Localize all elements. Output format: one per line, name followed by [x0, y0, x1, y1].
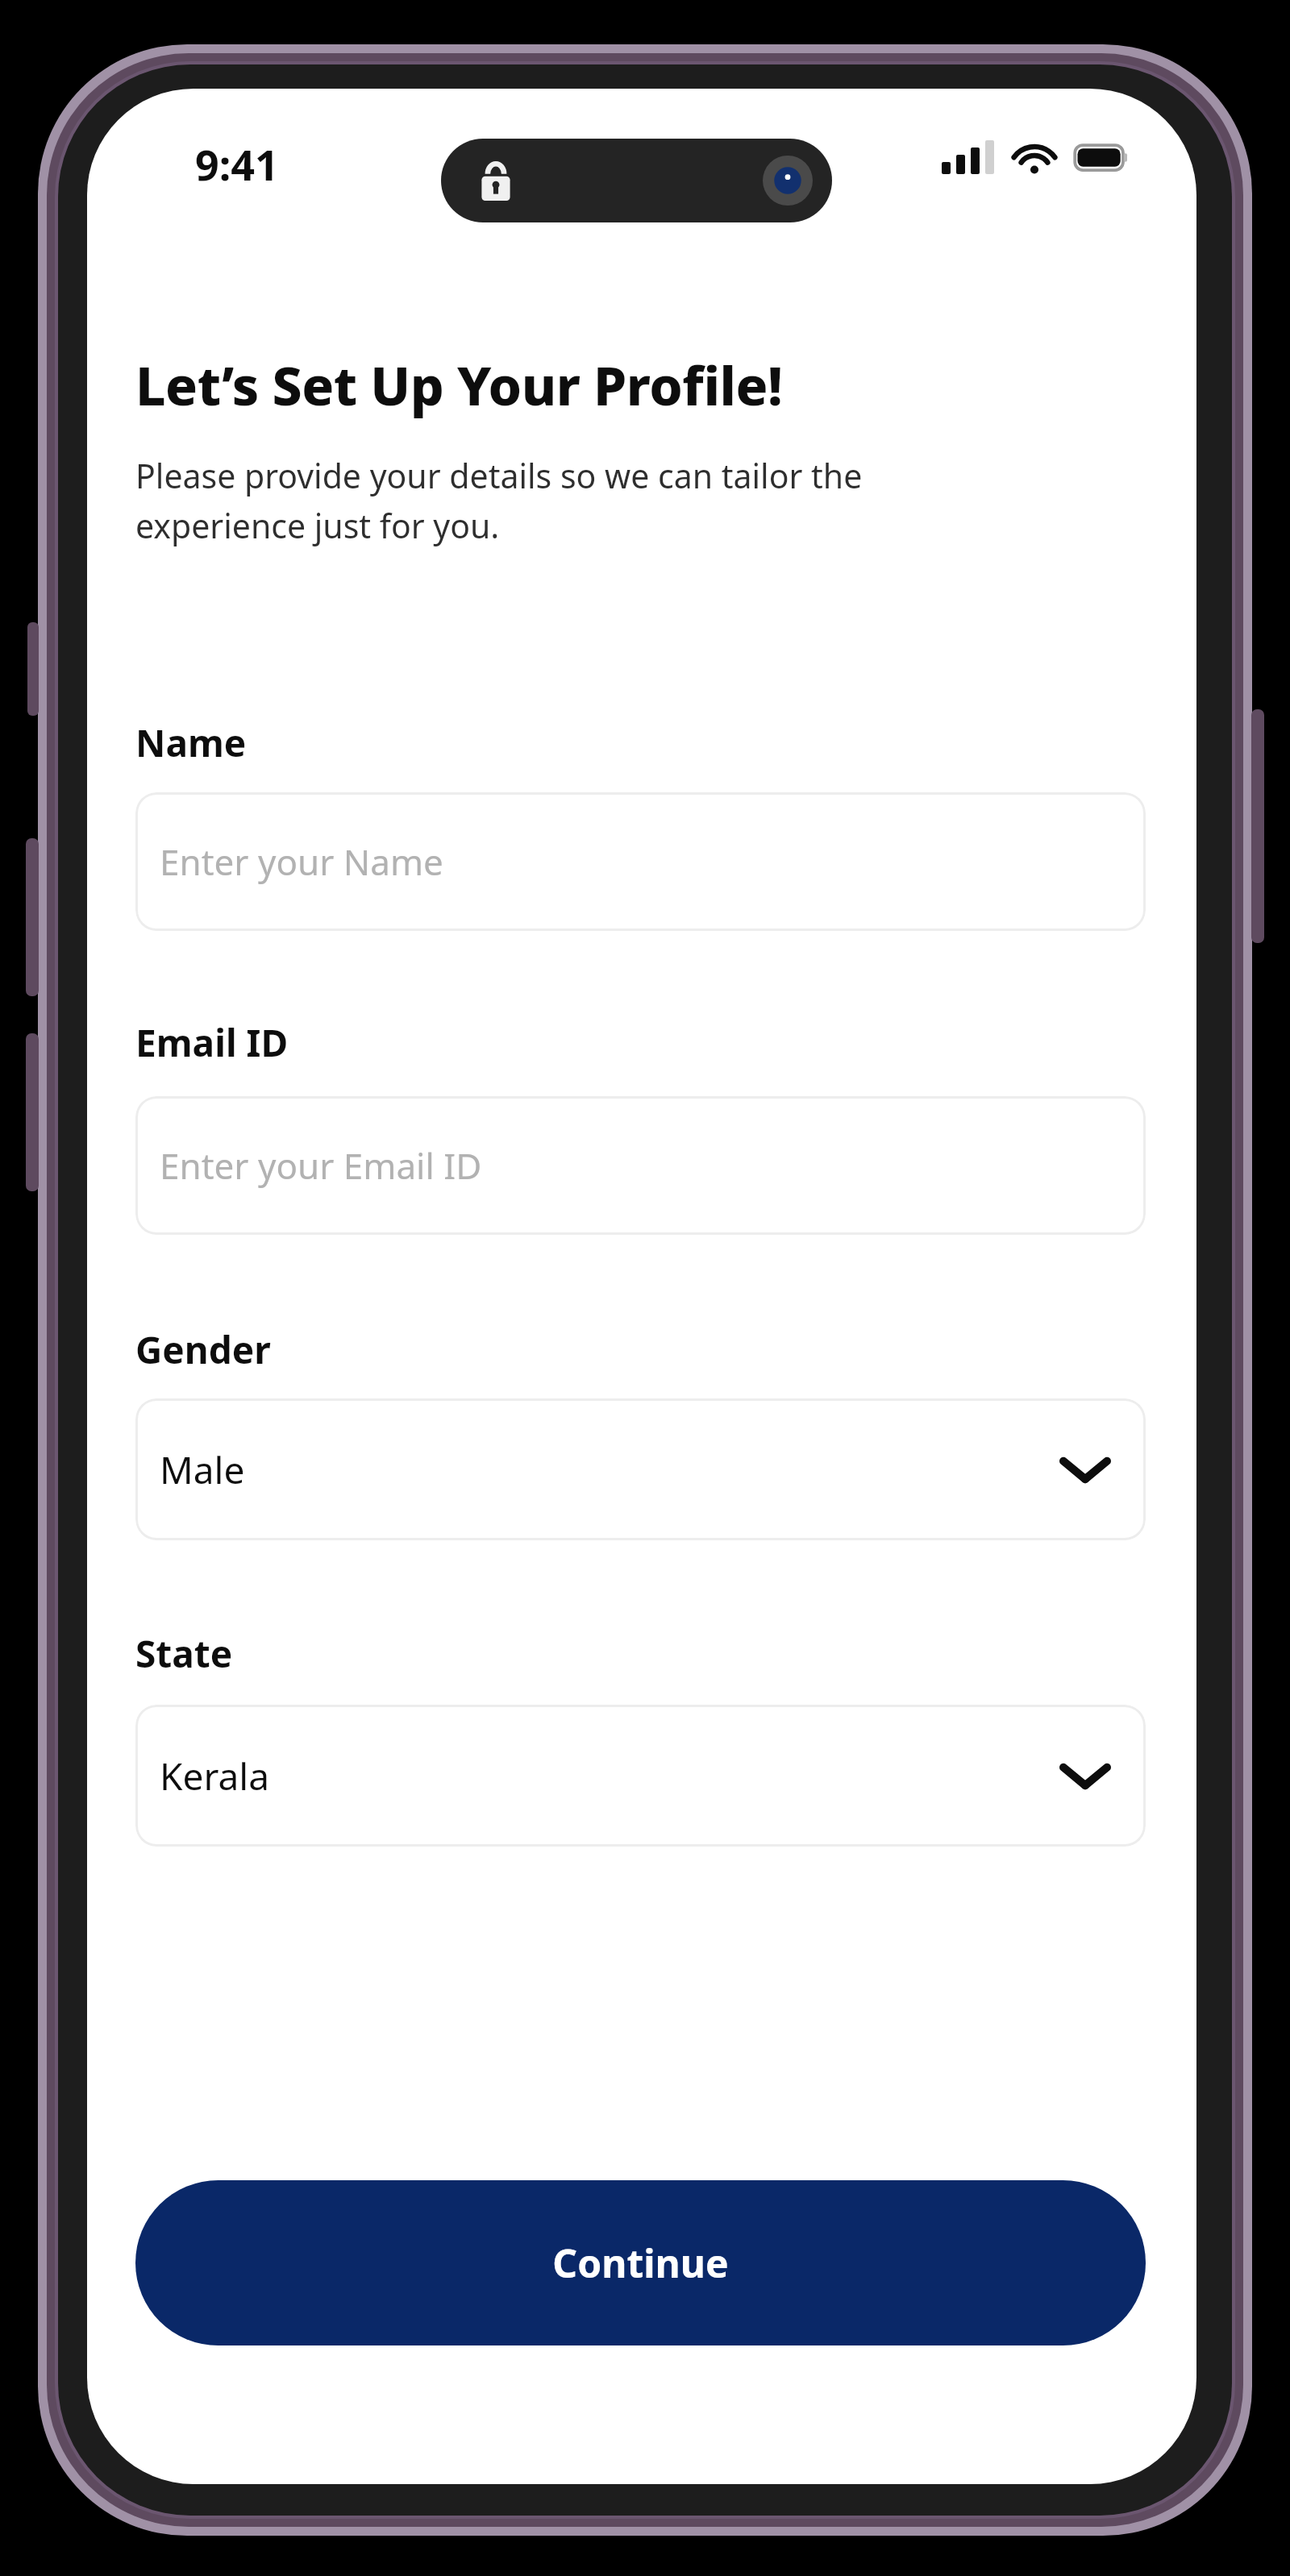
button[interactable]: Enter your Name [135, 792, 1146, 931]
staticText: Enter your Email ID [160, 1141, 482, 1190]
staticText: 9:41 [195, 135, 279, 193]
staticText: Email ID [135, 1017, 289, 1068]
staticText: Continue [552, 2237, 729, 2289]
button[interactable]: Select gender [135, 1398, 1146, 1540]
staticText: Let’s Set Up Your Profile! [135, 348, 783, 421]
staticText: Gender [135, 1324, 271, 1375]
button[interactable]: Select state [135, 1705, 1146, 1847]
staticText: Name [135, 717, 247, 768]
staticText: Kerala [160, 1751, 269, 1801]
button[interactable]: Enter your Email ID [135, 1096, 1146, 1235]
staticText: State [135, 1628, 233, 1679]
button[interactable]: Continue [135, 2180, 1146, 2345]
staticText: Male [160, 1444, 245, 1495]
staticText: Please provide your details so we can ta… [135, 453, 863, 548]
staticText: Enter your Name [160, 837, 443, 886]
